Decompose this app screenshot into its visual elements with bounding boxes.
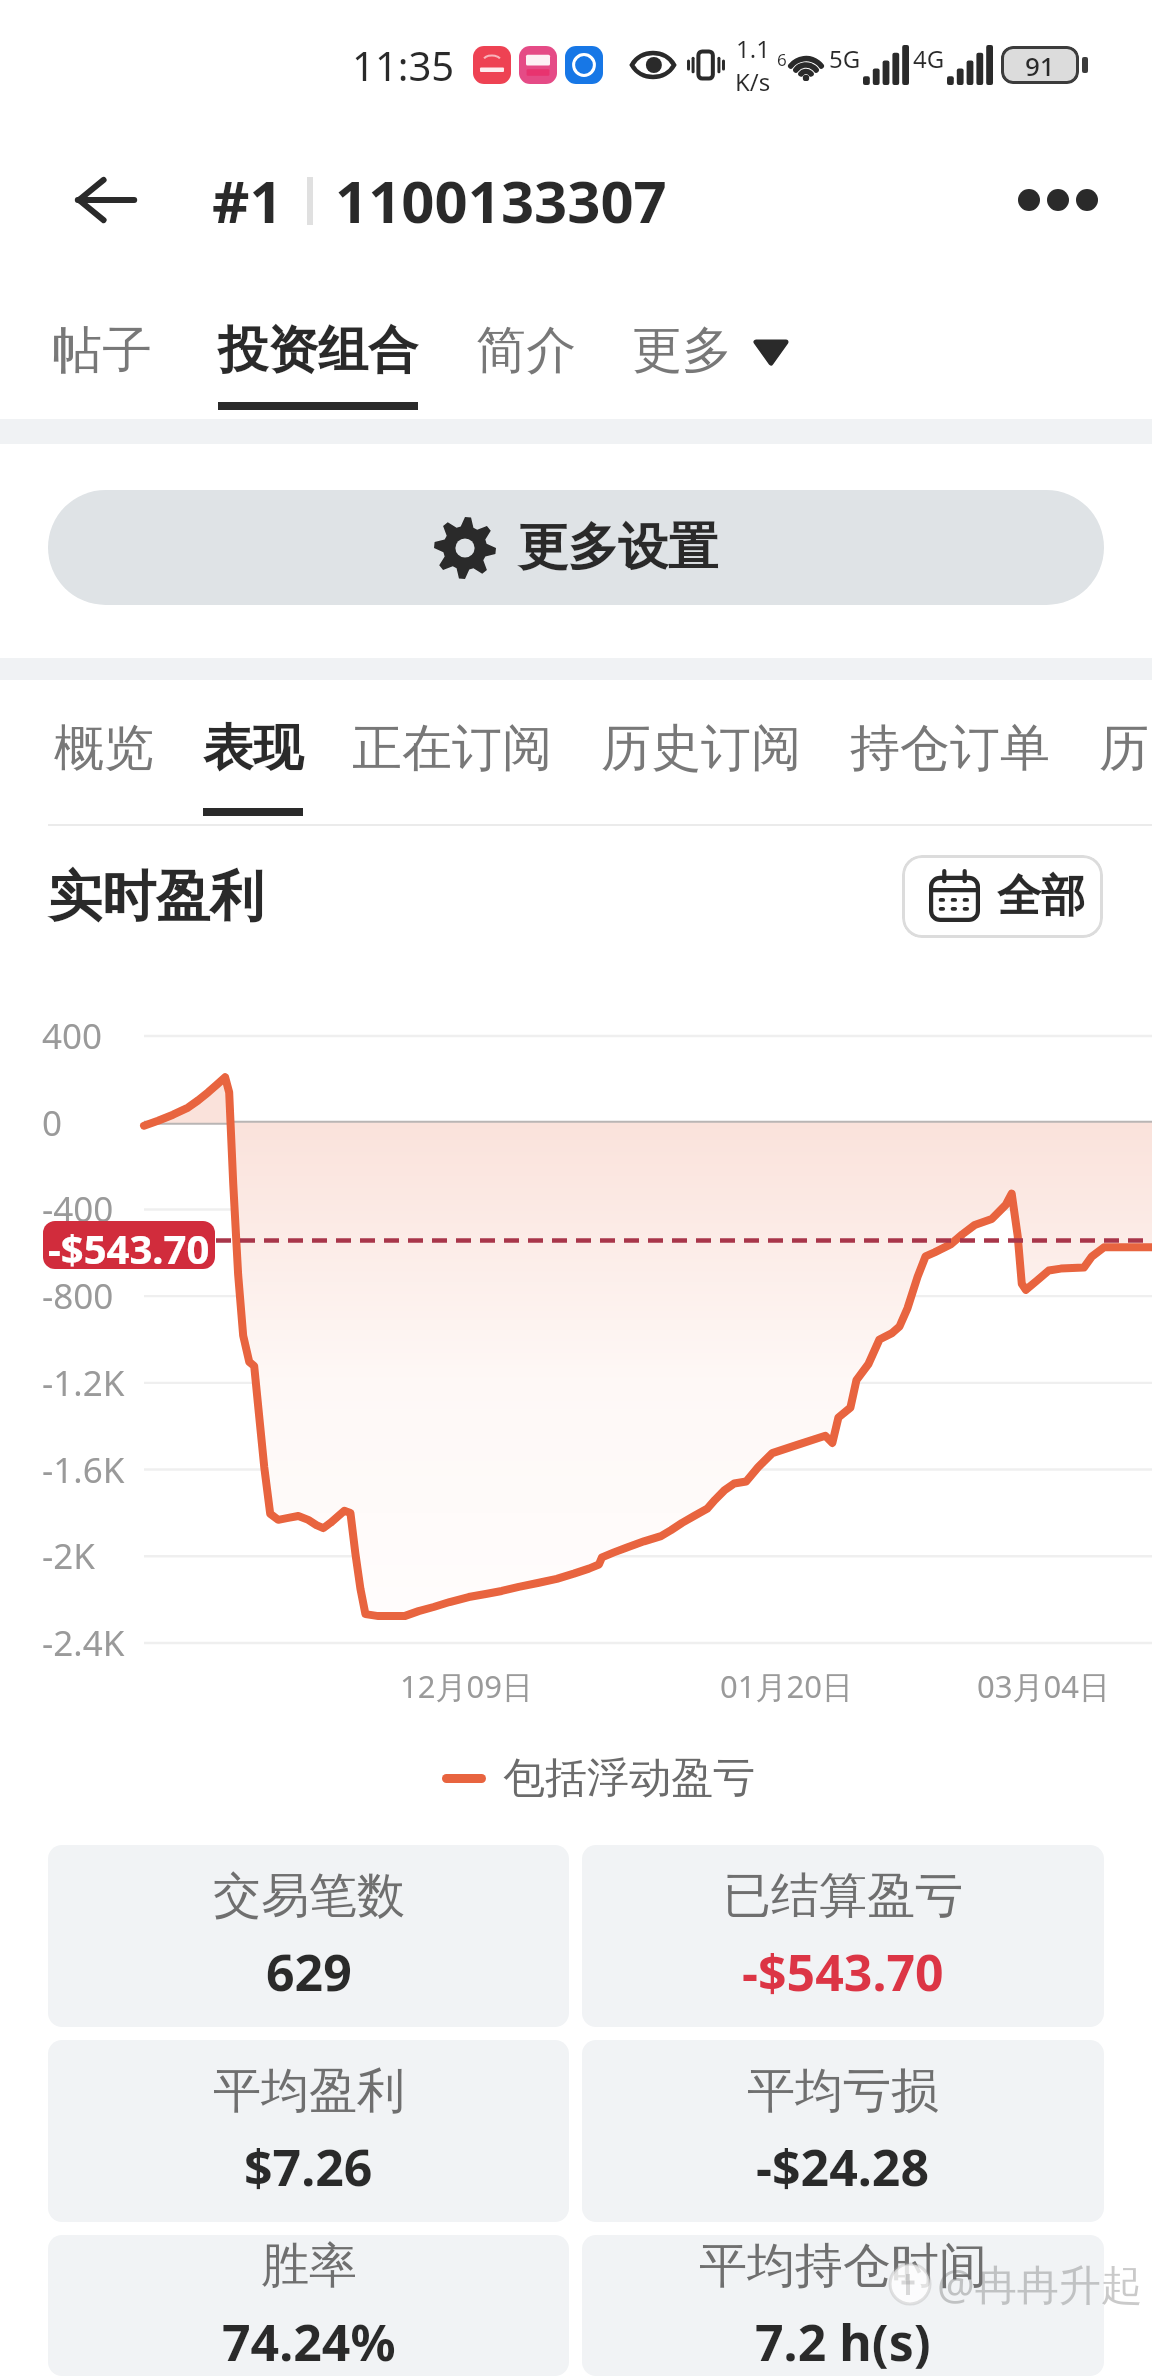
staticText: 1100133307 — [335, 161, 667, 240]
button[interactable]: 历 — [1099, 717, 1149, 816]
staticText: -$543.70 — [742, 1938, 944, 2006]
staticText: -400 — [42, 1185, 114, 1233]
staticText: 已结算盈亏 — [723, 1866, 963, 1926]
button[interactable]: 全部 — [902, 855, 1103, 938]
staticText: 全部 — [997, 869, 1085, 924]
staticText: 03月04日 — [977, 1665, 1110, 1707]
staticText: 平均盈利 — [213, 2061, 405, 2121]
staticText: K/s — [735, 65, 771, 98]
staticText: -1.2K — [42, 1359, 125, 1407]
staticText: 持仓订单 — [850, 717, 1050, 780]
button[interactable]: 简介 — [476, 319, 576, 410]
staticText: 1.1 — [736, 32, 770, 65]
staticText: -2K — [42, 1532, 95, 1580]
staticText: 7.2 h(s) — [755, 2308, 931, 2376]
staticText: 平均亏损 — [747, 2061, 939, 2121]
button[interactable]: 帖子 — [52, 319, 152, 410]
staticText: 5G — [829, 42, 861, 75]
button[interactable]: 平均亏损 — [582, 2040, 1104, 2222]
staticText: @冉冉升起 — [937, 2255, 1143, 2312]
button[interactable]: 正在订阅 — [352, 717, 552, 816]
staticText: 400 — [42, 1012, 103, 1060]
button[interactable]: 表现 — [203, 717, 303, 816]
staticText: 简介 — [476, 319, 576, 382]
staticText: 4G — [913, 42, 945, 75]
staticText: 表现 — [203, 717, 303, 780]
staticText: 0 — [42, 1099, 63, 1147]
staticText: 01月20日 — [720, 1665, 853, 1707]
staticText: -2.4K — [42, 1619, 125, 1667]
staticText: 更多设置 — [518, 516, 718, 579]
staticText: 正在订阅 — [352, 717, 552, 780]
button[interactable]: More options — [1006, 171, 1110, 229]
staticText: 12月09日 — [400, 1665, 533, 1707]
staticText: 概览 — [54, 717, 154, 780]
staticText: 投资组合 — [218, 319, 418, 382]
staticText: 历 — [1099, 717, 1149, 780]
staticText: 胜率 — [261, 2236, 357, 2296]
staticText: #1 — [212, 161, 283, 240]
button[interactable]: 概览 — [54, 717, 154, 816]
staticText: 平均持仓时间 — [699, 2236, 987, 2296]
staticText: 11:35 — [352, 38, 455, 92]
staticText: -$543.70 — [48, 1221, 210, 1269]
button[interactable]: 历史订阅 — [601, 717, 801, 816]
staticText: 交易笔数 — [213, 1866, 405, 1926]
staticText: 实时盈利 — [48, 863, 264, 931]
staticText: 629 — [266, 1938, 352, 2006]
staticText: -800 — [42, 1272, 114, 1320]
staticText: $7.26 — [244, 2133, 373, 2201]
button[interactable]: 平均盈利 — [48, 2040, 569, 2222]
staticText: 更多 — [632, 319, 732, 382]
button[interactable]: 更多 — [632, 319, 786, 382]
button[interactable]: 交易笔数 — [48, 1845, 569, 2027]
staticText: 74.24% — [222, 2308, 396, 2376]
staticText: -1.6K — [42, 1446, 125, 1494]
button[interactable]: 投资组合 — [218, 319, 418, 410]
staticText: 包括浮动盈亏 — [503, 1752, 755, 1805]
button[interactable]: 已结算盈亏 — [582, 1845, 1104, 2027]
staticText: 帖子 — [52, 319, 152, 382]
staticText: 91 — [1025, 48, 1055, 83]
button[interactable]: 持仓订单 — [850, 717, 1050, 816]
button[interactable]: 更多设置 — [48, 490, 1104, 605]
staticText: -$24.28 — [756, 2133, 930, 2201]
button[interactable]: 胜率 — [48, 2235, 569, 2376]
button[interactable]: Back — [46, 140, 166, 260]
staticText: 6 — [777, 48, 787, 71]
button[interactable]: 平均持仓时间 — [582, 2235, 1104, 2376]
staticText: 历史订阅 — [601, 717, 801, 780]
